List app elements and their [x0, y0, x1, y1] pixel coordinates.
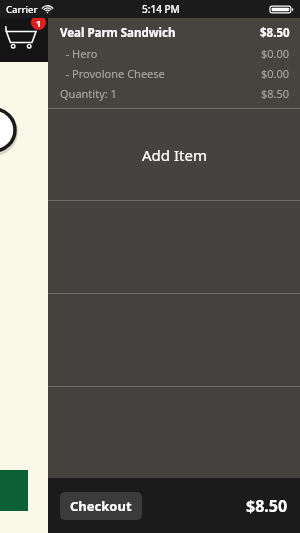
button[interactable]: Veal Parm Sandwich — [48, 18, 300, 108]
staticText: Carrier — [6, 3, 38, 16]
staticText: $0.00 — [261, 66, 290, 81]
button[interactable]: Cart — [4, 20, 44, 54]
staticText: - Provolone Cheese — [60, 66, 165, 81]
staticText: Veal Parm Sandwich — [60, 25, 176, 41]
staticText: Add Item — [142, 145, 207, 165]
staticText: Quantity: 1 — [60, 86, 117, 101]
button[interactable]: Checkout — [60, 492, 142, 520]
staticText: - Hero — [60, 46, 98, 61]
staticText: 1 — [36, 17, 42, 29]
staticText: 5:14 PM — [142, 2, 180, 16]
staticText: $8.50 — [260, 25, 290, 41]
staticText: $0.00 — [261, 46, 290, 61]
staticText: $8.50 — [246, 495, 288, 517]
staticText: Checkout — [70, 497, 132, 515]
staticText: $8.50 — [261, 86, 290, 101]
button[interactable]: Add Item — [48, 109, 300, 200]
